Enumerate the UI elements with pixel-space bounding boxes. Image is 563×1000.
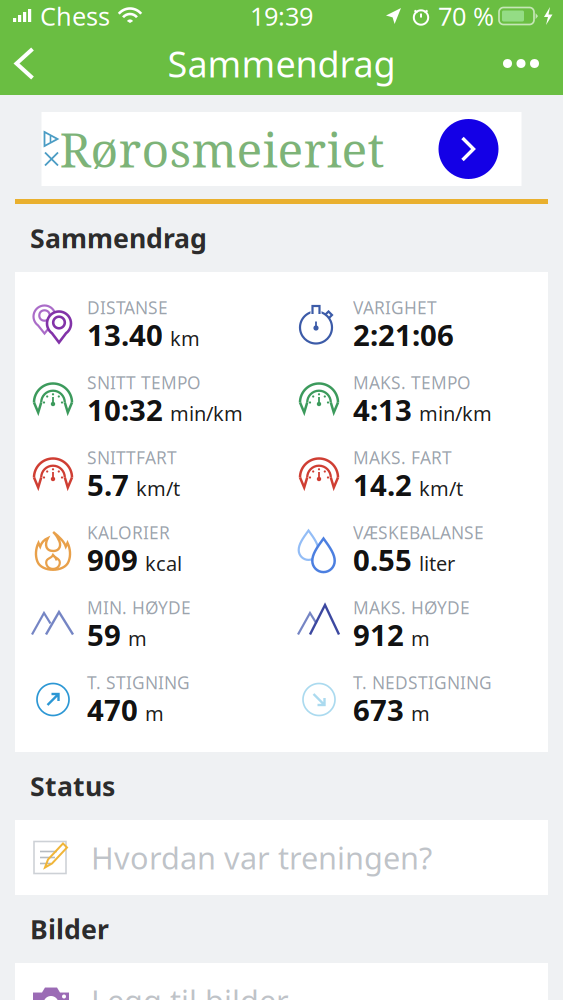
staticText: Chess bbox=[40, 0, 110, 33]
staticText: 2:21:06 bbox=[353, 315, 454, 354]
staticText: MAKS. TEMPO bbox=[353, 371, 471, 394]
staticText: Bilder bbox=[30, 911, 109, 947]
staticText: km/t bbox=[419, 475, 463, 501]
staticText: 14.2 bbox=[353, 465, 412, 504]
staticText: 912 bbox=[353, 615, 404, 654]
button[interactable]: Advertisement bbox=[41, 112, 521, 186]
staticText: 59 bbox=[87, 615, 121, 654]
staticText: m bbox=[411, 700, 430, 726]
staticText: 5.7 bbox=[87, 465, 129, 504]
staticText: 13.40 bbox=[87, 315, 163, 354]
staticText: DISTANSE bbox=[87, 296, 168, 319]
button[interactable]: Back bbox=[2, 32, 47, 95]
staticText: MAKS. HØYDE bbox=[353, 596, 470, 619]
staticText: liter bbox=[419, 550, 455, 576]
staticText: 673 bbox=[353, 690, 404, 729]
staticText: m bbox=[145, 700, 164, 726]
staticText: km/t bbox=[136, 475, 180, 501]
staticText: m bbox=[411, 625, 430, 651]
staticText: m bbox=[128, 625, 147, 651]
staticText: T. NEDSTIGNING bbox=[353, 671, 492, 694]
staticText: Sammendrag bbox=[167, 40, 395, 87]
staticText: KALORIER bbox=[87, 521, 170, 544]
staticText: Hvordan var treningen? bbox=[91, 837, 432, 878]
staticText: T. STIGNING bbox=[87, 671, 190, 694]
staticText: MIN. HØYDE bbox=[87, 596, 191, 619]
button[interactable]: Legg til bilder bbox=[15, 963, 548, 1000]
staticText: 70 % bbox=[438, 0, 494, 33]
staticText: 19:39 bbox=[250, 0, 313, 33]
staticText: Legg til bilder bbox=[91, 980, 289, 1000]
staticText: SNITTFART bbox=[87, 446, 177, 469]
staticText: min/km bbox=[170, 400, 243, 426]
staticText: VARIGHET bbox=[353, 296, 437, 319]
staticText: Rørosmeieriet bbox=[59, 116, 384, 182]
staticText: Status bbox=[30, 768, 115, 804]
staticText: 909 bbox=[87, 540, 138, 579]
staticText: 470 bbox=[87, 690, 138, 729]
staticText: 0.55 bbox=[353, 540, 412, 579]
staticText: MAKS. FART bbox=[353, 446, 452, 469]
staticText: Sammendrag bbox=[30, 220, 207, 256]
staticText: 4:13 bbox=[353, 390, 412, 429]
button[interactable]: Hvordan var treningen? bbox=[15, 820, 548, 895]
staticText: SNITT TEMPO bbox=[87, 371, 201, 394]
staticText: min/km bbox=[419, 400, 492, 426]
staticText: VÆSKEBALANSE bbox=[353, 521, 484, 544]
staticText: km bbox=[170, 325, 200, 351]
staticText: 10:32 bbox=[87, 390, 163, 429]
button[interactable]: More options bbox=[493, 32, 549, 95]
staticText: kcal bbox=[145, 550, 182, 576]
